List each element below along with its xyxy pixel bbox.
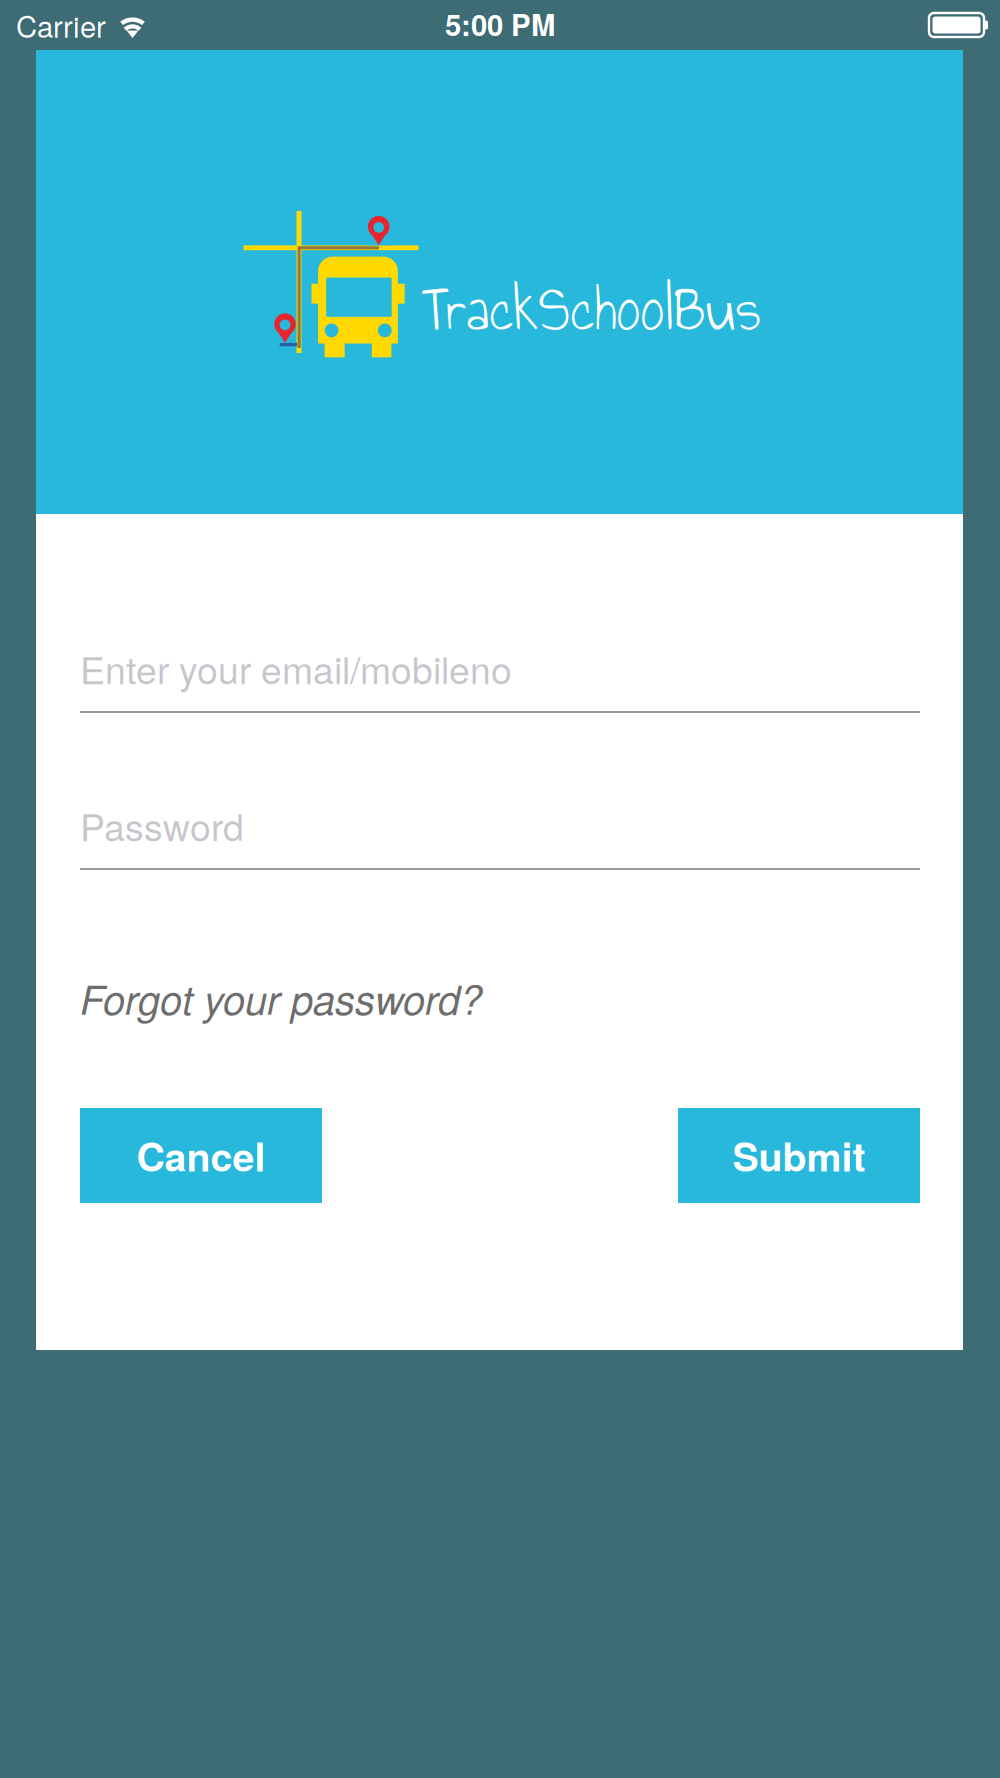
- button[interactable]: Cancel: [80, 1108, 322, 1203]
- staticText: Enter your email/mobileno: [80, 641, 512, 695]
- staticText: Carrier: [16, 4, 106, 46]
- button[interactable]: Forgot your password?: [80, 975, 482, 1021]
- staticText: TrackSchoolBus: [421, 261, 761, 357]
- staticText: Submit: [732, 1127, 865, 1184]
- button[interactable]: Submit: [678, 1108, 920, 1203]
- staticText: Cancel: [136, 1127, 265, 1184]
- staticText: Forgot your password?: [80, 970, 482, 1026]
- staticText: Password: [80, 798, 244, 852]
- staticText: 5:00 PM: [445, 3, 555, 45]
